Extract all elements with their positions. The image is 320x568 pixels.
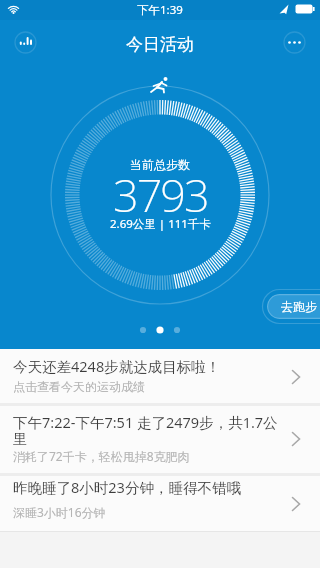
button[interactable]: 昨晚睡了8小时23分钟，睡得不错哦 [0,476,320,531]
staticText: 去跑步 [281,299,317,314]
button[interactable] [11,28,40,57]
staticText: 里 [13,430,28,448]
button[interactable]: 今天还差4248步就达成目标啦！ [0,349,320,403]
staticText: 当前总步数 [130,157,190,172]
staticText: 深睡3小时16分钟 [13,504,106,520]
staticText: 今日活动 [126,34,194,55]
button[interactable] [280,28,309,57]
button[interactable]: 下午7:22-下午7:51 走了2479步，共1.7公 [0,406,320,473]
staticText: 昨晚睡了8小时23分钟，睡得不错哦 [13,477,241,497]
staticText: 下午7:22-下午7:51 走了2479步，共1.7公 [13,412,278,432]
staticText: 今天还差4248步就达成目标啦！ [13,356,221,376]
staticText: 点击查看今天的运动成绩 [13,379,145,394]
staticText: 2.69公里 | 111千卡 [110,216,211,232]
staticText: 3793 [113,164,208,224]
staticText: 下午1:39 [137,2,183,18]
staticText: 消耗了72千卡，轻松甩掉8克肥肉 [13,448,190,464]
button[interactable]: 去跑步 [267,294,320,319]
